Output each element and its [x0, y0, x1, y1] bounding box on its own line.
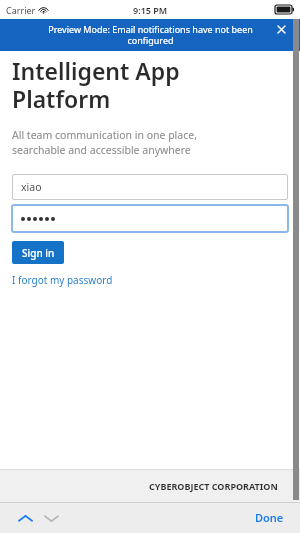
- button[interactable]: Previous field: [14, 507, 36, 529]
- staticText: CYBEROBJECT CORPORATION: [149, 480, 278, 492]
- staticText: 9:15 PM: [133, 4, 168, 16]
- staticText: Preview Mode: Email notifications have n…: [48, 23, 253, 47]
- button[interactable]: Next field: [40, 507, 62, 529]
- button[interactable]: Dismiss notification: [275, 23, 288, 36]
- button[interactable]: [11, 204, 289, 233]
- button[interactable]: Done: [249, 506, 290, 529]
- staticText: Done: [255, 510, 284, 525]
- staticText: I forgot my password: [12, 273, 113, 287]
- button[interactable]: xiao: [12, 174, 288, 200]
- staticText: All team communication in one place, sea…: [12, 128, 197, 157]
- staticText: Sign in: [22, 246, 55, 260]
- staticText: xiao: [21, 180, 42, 194]
- button[interactable]: I forgot my password: [12, 273, 113, 287]
- button[interactable]: Sign in: [12, 241, 64, 264]
- staticText: Carrier: [6, 4, 36, 16]
- staticText: Intelligent App Platform: [12, 55, 180, 115]
